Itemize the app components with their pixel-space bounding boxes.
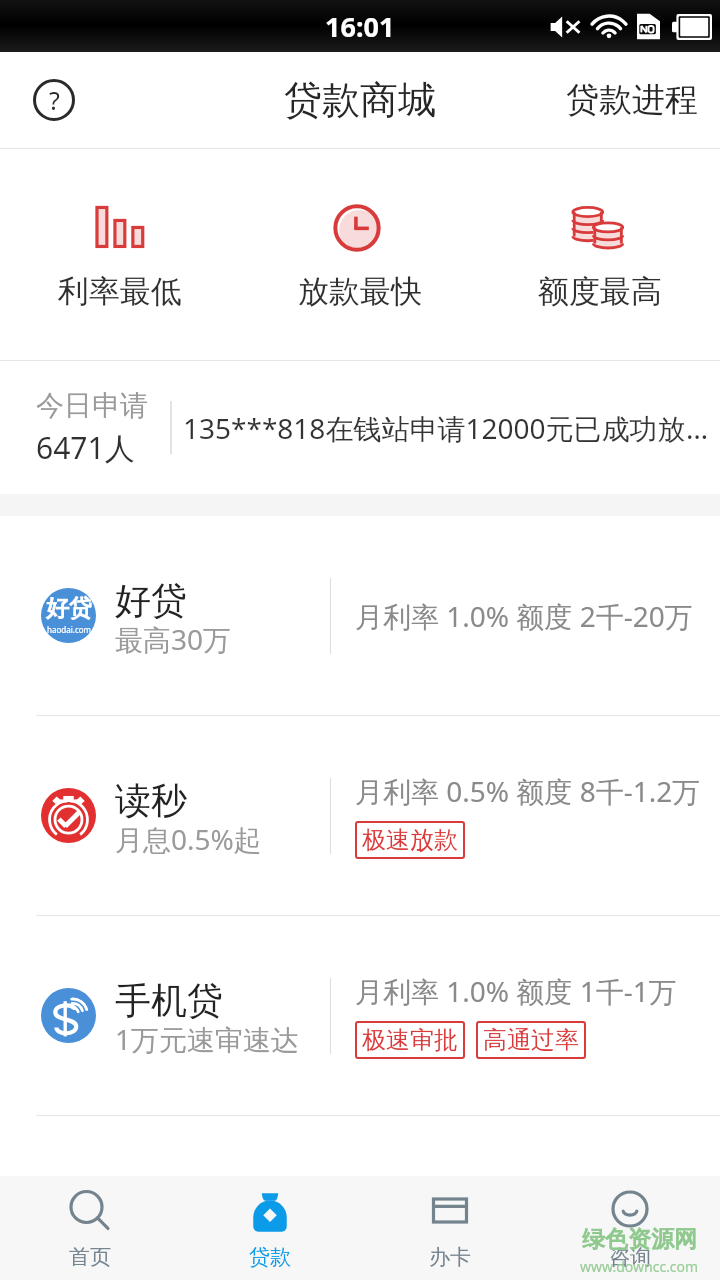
button[interactable]: 咨询 (540, 1176, 720, 1280)
button[interactable]: 好贷 (0, 516, 720, 715)
staticText: 高通过率 (483, 1025, 579, 1055)
staticText: 咨询 (609, 1244, 651, 1270)
staticText: 月息0.5%起 (115, 820, 262, 858)
staticText: 极速审批 (362, 1025, 458, 1055)
staticText: 利率最低 (58, 272, 182, 311)
staticText: 读秒 (115, 778, 187, 823)
staticText: 135***818在钱站申请12000元已成功放 (183, 409, 686, 447)
staticText: 极速放款 (362, 825, 458, 855)
button[interactable]: 放款最快 (240, 149, 480, 360)
staticText: 首页 (69, 1244, 111, 1270)
button[interactable]: 极速放款 (355, 821, 465, 859)
staticText: 月利率 1.0% 额度 2千-20万 (355, 597, 693, 635)
button[interactable]: 读秒 (0, 716, 720, 915)
staticText: 好贷 (115, 578, 187, 623)
staticText: 今日申请 (36, 388, 148, 423)
staticText: 手机贷 (115, 978, 223, 1023)
staticText: … (686, 409, 709, 447)
button[interactable]: 手机贷 (0, 916, 720, 1115)
button[interactable]: 额度最高 (480, 149, 720, 360)
staticText: haodai.com (47, 624, 92, 635)
staticText: 好贷 (46, 594, 92, 623)
staticText: 贷款 (249, 1244, 291, 1270)
staticText: 绿色资源网 (582, 1225, 697, 1254)
staticText: 放款最快 (298, 272, 422, 311)
button[interactable]: 极速审批 (355, 1021, 465, 1059)
staticText: www.downcc.com (580, 1257, 699, 1276)
button[interactable]: 首页 (0, 1176, 180, 1280)
button[interactable]: 办卡 (360, 1176, 540, 1280)
button[interactable]: 高通过率 (476, 1021, 586, 1059)
button[interactable]: 利率最低 (0, 149, 240, 360)
staticText: 办卡 (429, 1244, 471, 1270)
staticText: 最高30万 (115, 620, 232, 658)
button[interactable]: 今日申请 (0, 361, 720, 494)
button[interactable]: 贷款进程 (550, 67, 714, 133)
staticText: 贷款进程 (566, 79, 698, 121)
staticText: 1万元速审速达 (115, 1020, 300, 1058)
staticText: 16:01 (325, 8, 395, 45)
staticText: ? (49, 83, 60, 117)
staticText: 6471人 (36, 427, 135, 468)
staticText: 月利率 1.0% 额度 1千-1万 (355, 972, 677, 1010)
staticText: 额度最高 (538, 272, 662, 311)
button[interactable]: 贷款 (180, 1176, 360, 1280)
staticText: 贷款商城 (284, 76, 436, 124)
staticText: 月利率 0.5% 额度 8千-1.2万 (355, 772, 701, 810)
button[interactable]: Help (18, 64, 90, 136)
